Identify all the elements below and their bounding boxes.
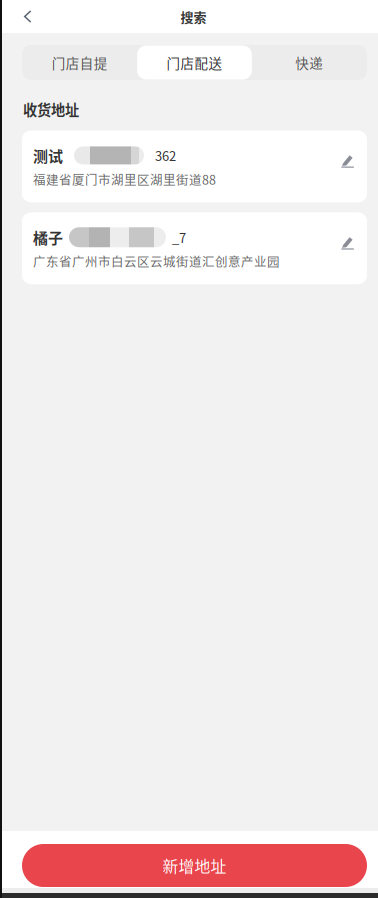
button[interactable]: Back — [0, 0, 44, 33]
button[interactable]: 新增地址 — [22, 844, 367, 887]
button[interactable]: 门店自提 — [22, 45, 137, 79]
staticText: 362 — [155, 146, 176, 165]
staticText: 测试 — [33, 145, 63, 166]
staticText: 福建省厦门市湖里区湖里街道88 — [33, 170, 216, 188]
button[interactable]: 橘子 — [22, 212, 367, 284]
staticText: 搜索 — [180, 7, 206, 26]
button[interactable]: 快递 — [252, 45, 366, 79]
staticText: 收货地址 — [23, 99, 79, 120]
button[interactable]: 测试 — [22, 131, 367, 202]
staticText: 门店配送 — [166, 53, 222, 72]
staticText: _7 — [172, 228, 186, 247]
button[interactable]: 门店配送 — [137, 45, 252, 79]
staticText: 橘子 — [33, 226, 63, 248]
staticText: 广东省广州市白云区云城街道汇创意产业园 — [33, 252, 280, 270]
staticText: 新增地址 — [162, 854, 226, 877]
staticText: 快递 — [295, 53, 323, 72]
staticText: 门店自提 — [52, 53, 108, 72]
